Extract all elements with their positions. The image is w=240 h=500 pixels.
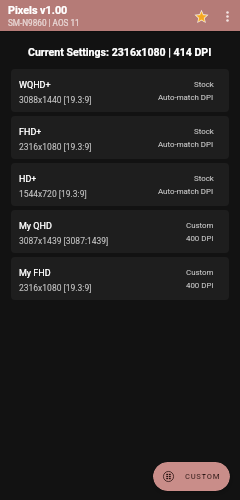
button[interactable]: More options xyxy=(216,5,238,27)
staticText: Auto-match DPI xyxy=(158,93,214,102)
staticText: 400 DPI xyxy=(186,234,214,243)
staticText: Custom xyxy=(186,221,214,230)
staticText: 2316x1080 [19.3:9] xyxy=(19,142,92,152)
staticText: HD+ xyxy=(19,174,37,185)
staticText: 3088x1440 [19.3:9] xyxy=(19,95,92,105)
staticText: 400 DPI xyxy=(186,281,214,290)
button[interactable]: FHD+ xyxy=(11,116,229,159)
button[interactable]: My FHD xyxy=(11,257,229,300)
staticText: My QHD xyxy=(19,221,52,232)
staticText: Auto-match DPI xyxy=(158,187,214,196)
button[interactable]: HD+ xyxy=(11,163,229,206)
staticText: 2316x1080 [19.3:9] xyxy=(19,283,92,293)
staticText: 1544x720 [19.3:9] xyxy=(19,189,87,199)
button[interactable]: WQHD+ xyxy=(11,69,229,112)
staticText: Custom xyxy=(186,268,214,277)
staticText: Pixels v1.00 xyxy=(8,4,68,17)
staticText: 3087x1439 [3087:1439] xyxy=(19,236,109,246)
staticText: Current Settings: 2316x1080 | 414 DPI xyxy=(28,46,212,58)
staticText: WQHD+ xyxy=(19,80,51,91)
staticText: Stock xyxy=(194,174,214,183)
button[interactable]: Favorite xyxy=(187,2,215,30)
staticText: Stock xyxy=(194,127,214,136)
staticText: CUSTOM xyxy=(185,472,221,481)
staticText: Stock xyxy=(194,80,214,89)
staticText: FHD+ xyxy=(19,127,42,138)
button[interactable]: CUSTOM xyxy=(153,462,230,491)
staticText: My FHD xyxy=(19,268,51,279)
button[interactable]: My QHD xyxy=(11,210,229,253)
staticText: Auto-match DPI xyxy=(158,140,214,149)
staticText: SM-N9860 | AOS 11 xyxy=(8,18,80,28)
